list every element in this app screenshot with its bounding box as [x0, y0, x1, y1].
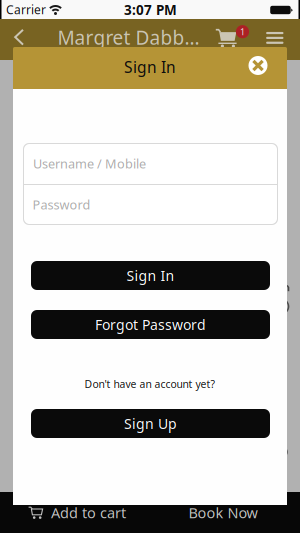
button[interactable]: Cart — [215, 26, 250, 48]
staticText: Sign Up — [124, 414, 177, 433]
button[interactable]: Add to cart — [28, 498, 126, 526]
staticText: 3:07 PM — [124, 0, 177, 19]
button[interactable]: Menu — [266, 32, 283, 44]
staticText: Username / Mobile — [33, 155, 146, 172]
staticText: Margret Dabb... — [57, 24, 199, 50]
button[interactable]: Book Now — [178, 498, 268, 526]
staticText: Forgot Password — [95, 315, 206, 334]
button[interactable]: Sign Up — [31, 409, 270, 438]
staticText: Add to cart — [51, 503, 126, 522]
staticText: 1 — [240, 26, 245, 38]
button[interactable]: Forgot Password — [31, 310, 270, 339]
staticText: Password — [32, 196, 90, 213]
staticText: Carrier — [6, 1, 46, 18]
button[interactable]: Back — [14, 29, 25, 46]
button[interactable]: Close — [248, 56, 267, 75]
staticText: Sign In — [126, 266, 174, 285]
staticText: Sign In — [124, 56, 176, 77]
button[interactable]: Sign In — [31, 261, 270, 290]
staticText: Book Now — [188, 503, 257, 522]
staticText: Don't have an account yet? — [84, 377, 215, 391]
